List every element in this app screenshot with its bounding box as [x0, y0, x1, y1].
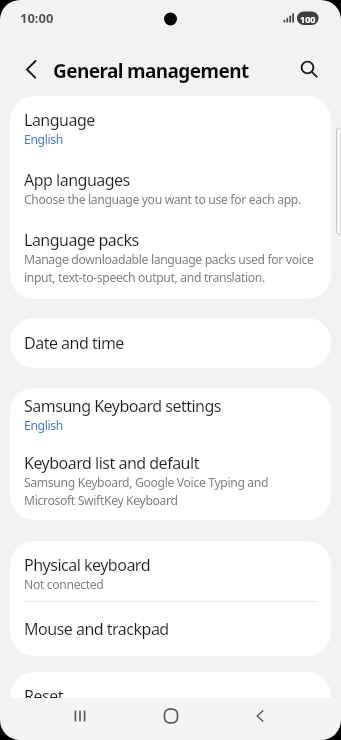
- staticText: Samsung Keyboard, Google Voice Typing an…: [24, 474, 269, 509]
- button[interactable]: Date and time: [10, 318, 331, 368]
- button[interactable]: [291, 52, 325, 86]
- staticText: Language packs: [24, 229, 139, 251]
- staticText: Mouse and trackpad: [24, 618, 169, 640]
- staticText: Manage downloadable language packs used …: [24, 251, 314, 286]
- staticText: 100: [300, 13, 316, 25]
- staticText: Keyboard list and default: [24, 452, 199, 474]
- button[interactable]: [234, 695, 290, 737]
- button[interactable]: [143, 695, 199, 737]
- button[interactable]: Keyboard list and default: [10, 445, 331, 520]
- button[interactable]: Physical keyboard: [10, 541, 331, 601]
- button[interactable]: Language: [10, 96, 331, 156]
- staticText: English: [24, 417, 64, 434]
- staticText: Language: [24, 109, 95, 131]
- button[interactable]: [52, 695, 108, 737]
- staticText: Physical keyboard: [24, 554, 150, 576]
- button[interactable]: Mouse and trackpad: [10, 602, 331, 656]
- staticText: English: [24, 131, 64, 148]
- staticText: 10:00: [20, 9, 54, 27]
- button[interactable]: Samsung Keyboard settings: [10, 388, 331, 445]
- button[interactable]: App languages: [10, 156, 331, 216]
- staticText: Choose the language you want to use for …: [24, 191, 301, 208]
- button[interactable]: [14, 52, 48, 86]
- button[interactable]: Reset: [10, 672, 331, 715]
- button[interactable]: Language packs: [10, 216, 331, 299]
- staticText: Not connected: [24, 576, 104, 593]
- staticText: Date and time: [24, 332, 124, 354]
- staticText: App languages: [24, 169, 130, 191]
- staticText: General management: [53, 58, 249, 84]
- staticText: Reset: [24, 685, 63, 707]
- staticText: Samsung Keyboard settings: [24, 395, 221, 417]
